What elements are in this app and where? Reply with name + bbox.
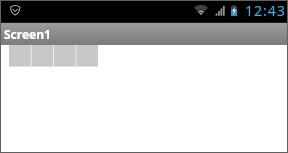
other: App running notification [10, 5, 21, 16]
button[interactable]: Screen1 [0, 23, 288, 45]
button[interactable]: Button [32, 45, 54, 67]
staticText: 12:43 [245, 1, 286, 20]
button[interactable]: Button [78, 45, 100, 67]
button[interactable]: Button [9, 45, 31, 67]
button[interactable]: Button [55, 45, 77, 67]
staticText: Screen1 [4, 26, 51, 42]
